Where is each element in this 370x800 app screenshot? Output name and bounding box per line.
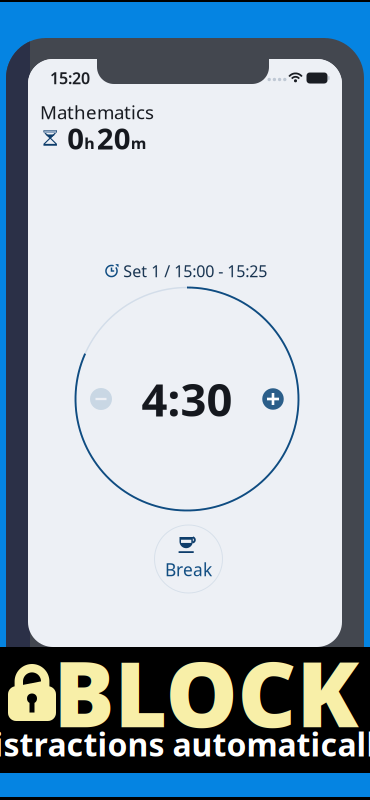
staticText: Break [165,558,212,581]
staticText: 20 [97,118,131,157]
staticText: Mathematics [40,100,154,124]
staticText: distractions automatically [0,723,370,765]
staticText: Set 1 / 15:00 - 15:25 [123,260,267,282]
staticText: m [131,132,147,154]
staticText: 4:30 [141,369,232,429]
button[interactable]: Increase time [260,386,286,412]
button[interactable]: Break [154,525,222,593]
staticText: 15:20 [50,67,90,89]
staticText: 0 [67,118,84,157]
staticText: BLOCK [53,632,358,752]
button[interactable]: Decrease time [88,386,114,412]
staticText: h [84,132,94,154]
